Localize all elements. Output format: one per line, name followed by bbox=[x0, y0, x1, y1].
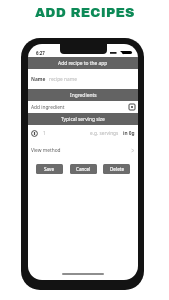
staticText: Typical serving size bbox=[61, 116, 105, 123]
staticText: Ingredients bbox=[70, 92, 97, 99]
staticText: recipe name bbox=[49, 76, 77, 83]
other: Info bbox=[31, 130, 38, 137]
staticText: Save bbox=[44, 166, 55, 172]
staticText: Add recipe to the app bbox=[58, 60, 108, 67]
staticText: in 0g bbox=[123, 130, 135, 137]
staticText: Delete bbox=[110, 166, 124, 172]
staticText: ADD RECIPES bbox=[35, 6, 135, 20]
staticText: View method bbox=[31, 147, 61, 154]
button[interactable]: Save bbox=[36, 164, 63, 174]
button[interactable]: Add ingredient bbox=[31, 101, 135, 113]
button[interactable]: View method bbox=[31, 142, 135, 159]
other: Add ingredient bbox=[129, 104, 135, 110]
button[interactable]: Cancel bbox=[70, 164, 97, 174]
staticText: Cancel bbox=[76, 166, 91, 172]
staticText: Name bbox=[31, 76, 46, 83]
staticText: e.g. servings bbox=[90, 130, 119, 137]
staticText: 6:27 bbox=[36, 50, 45, 56]
staticText: 1 bbox=[43, 130, 46, 137]
staticText: Add ingredient bbox=[31, 104, 65, 111]
button[interactable]: Name bbox=[31, 69, 135, 89]
button[interactable]: Delete bbox=[103, 164, 130, 174]
